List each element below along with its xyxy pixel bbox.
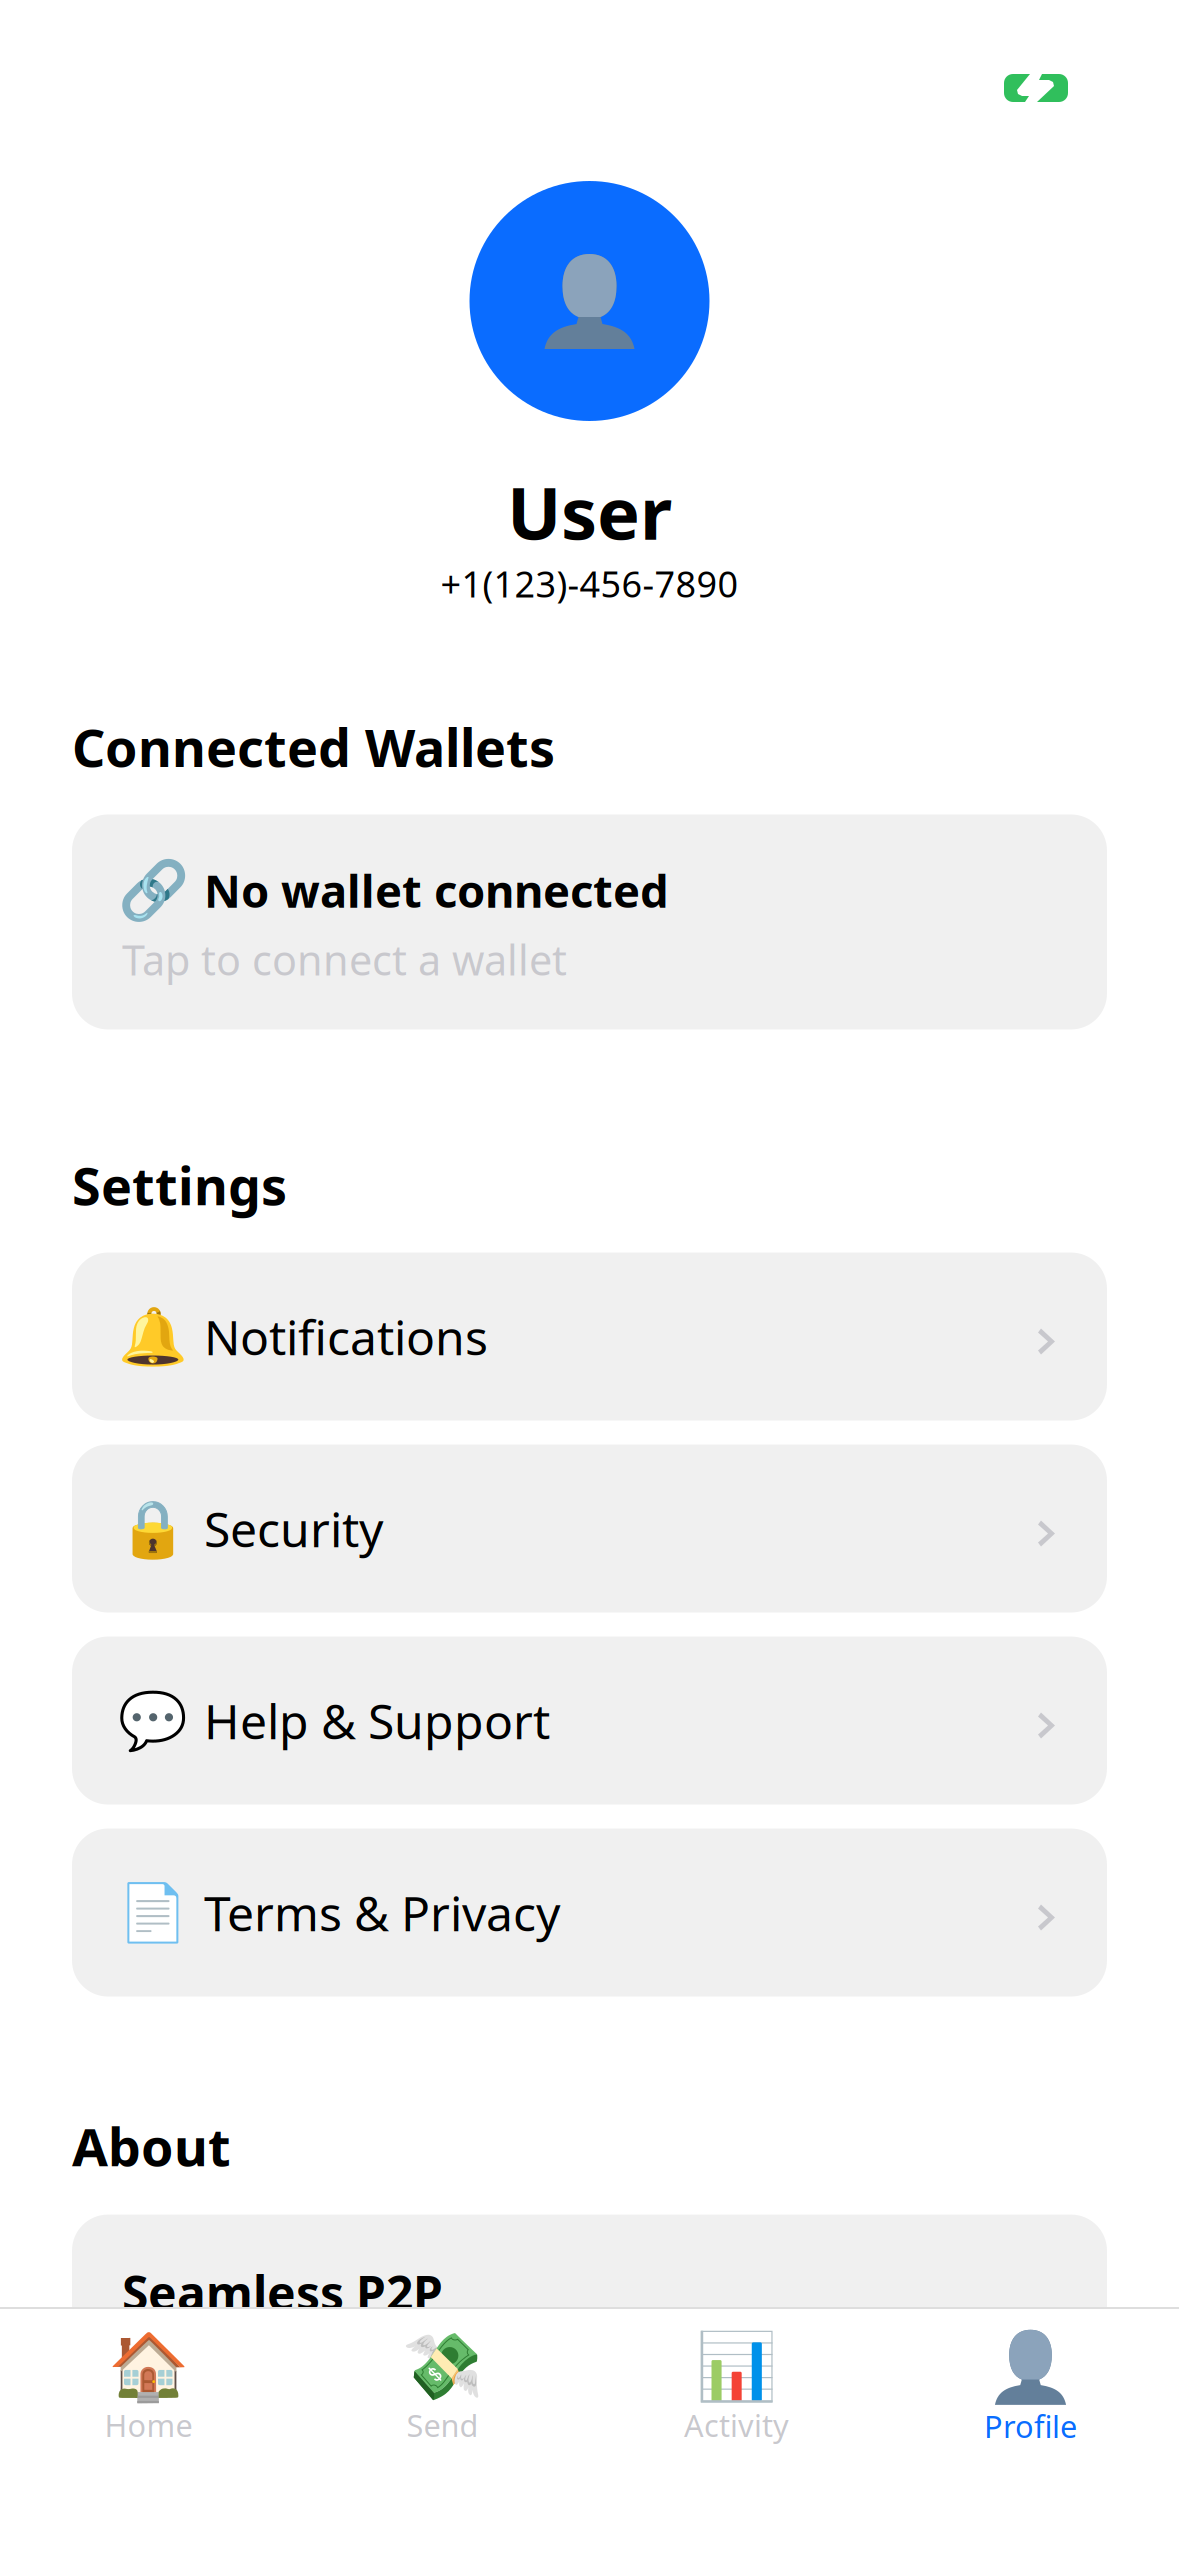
staticText: User <box>507 464 672 560</box>
staticText: 💬 <box>118 1688 188 1752</box>
button[interactable]: 💬 <box>72 1636 1107 1804</box>
staticText: Notifications <box>204 1305 488 1368</box>
button[interactable]: 💸 <box>295 2329 589 2459</box>
staticText: +1(123)-456-7890 <box>440 560 738 607</box>
staticText: 🔗 <box>117 857 188 923</box>
button[interactable]: Profile <box>883 2329 1177 2459</box>
staticText: No wallet connected <box>204 860 669 920</box>
staticText: Seamless P2P <box>122 2261 443 2324</box>
staticText: Home <box>104 2405 192 2445</box>
staticText: Terms & Privacy <box>204 1881 560 1944</box>
staticText: 🔔 <box>118 1304 188 1368</box>
staticText: Security <box>204 1497 383 1560</box>
button[interactable]: 🏠 <box>1 2329 295 2459</box>
staticText: About <box>72 2111 231 2181</box>
staticText: Help & Support <box>204 1689 550 1752</box>
staticText: 🔒 <box>118 1496 188 1560</box>
staticText: 🏠 <box>108 2329 189 2404</box>
staticText: Activity <box>684 2405 789 2445</box>
staticText: 💸 <box>402 2329 483 2404</box>
button[interactable]: 🔗 <box>72 814 1107 1029</box>
staticText: Send <box>406 2405 478 2445</box>
staticText: Profile <box>984 2406 1077 2446</box>
staticText: Connected Wallets <box>72 712 555 781</box>
staticText: Settings <box>72 1150 287 1220</box>
button[interactable]: 📊 <box>589 2329 883 2459</box>
button[interactable]: 🔔 <box>72 1252 1107 1420</box>
staticText: 📄 <box>118 1880 188 1944</box>
button[interactable]: 🔒 <box>72 1444 1107 1612</box>
button[interactable]: 📄 <box>72 1828 1107 1996</box>
staticText: Version 1.0.0 <box>122 2333 373 2388</box>
staticText: Tap to connect a wallet <box>122 932 567 987</box>
staticText: 📊 <box>696 2329 777 2404</box>
